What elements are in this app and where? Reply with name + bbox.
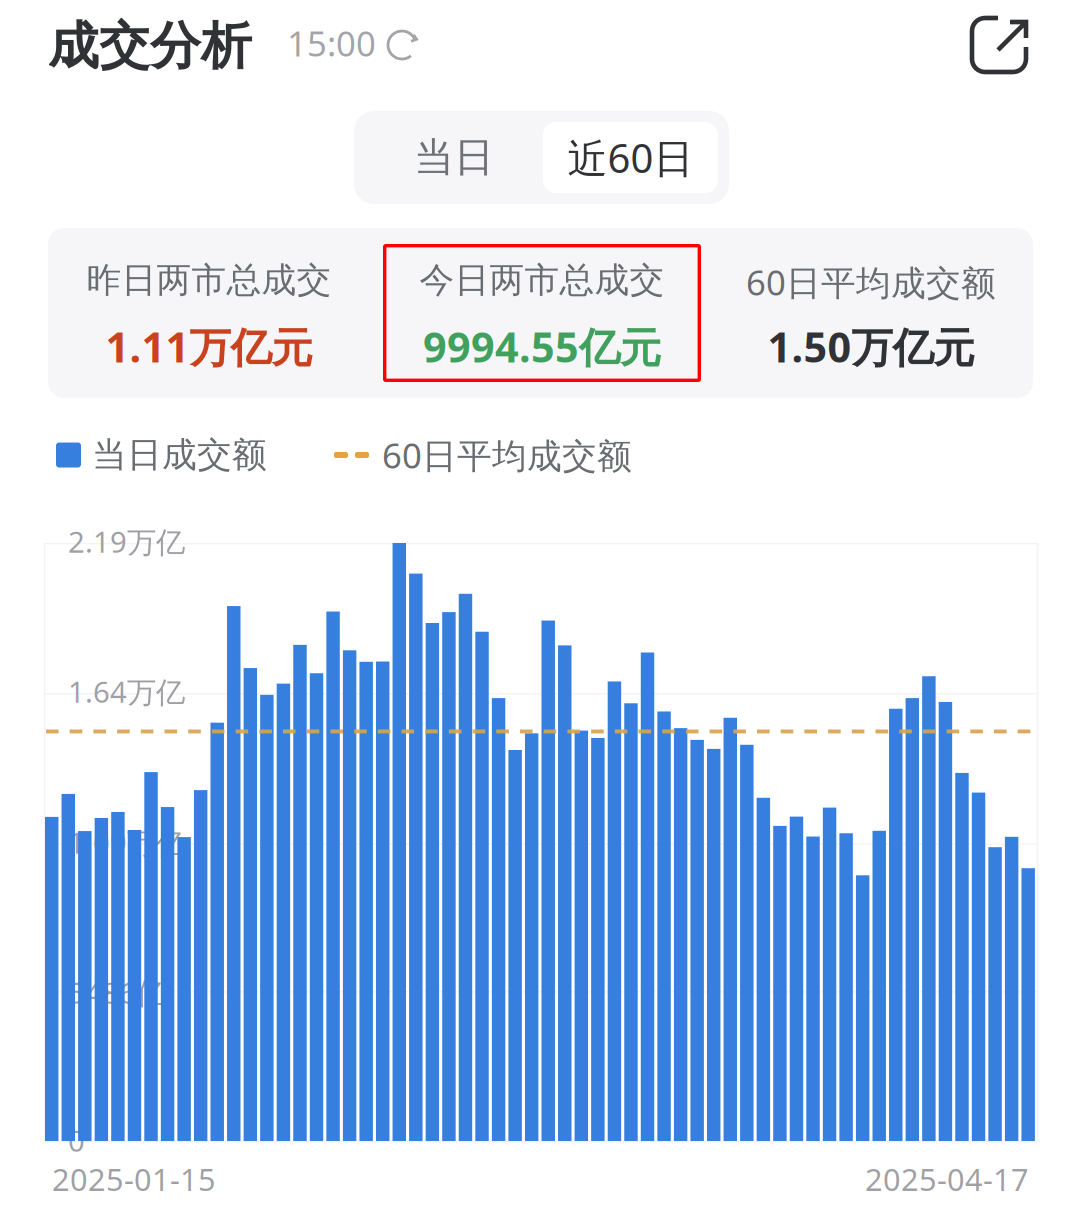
button[interactable]: 今日两市总成交 <box>383 244 701 382</box>
staticText: 当日成交额 <box>92 434 267 476</box>
staticText: 9994.55亿元 <box>423 319 661 374</box>
button[interactable]: 近60日 <box>543 122 718 193</box>
staticText: 1.11万亿元 <box>105 319 312 374</box>
staticText: 今日两市总成交 <box>419 259 664 302</box>
staticText: 60日平均成交额 <box>746 259 996 305</box>
staticText: 昨日两市总成交 <box>86 259 331 302</box>
button[interactable]: Refresh at 15:00 <box>287 14 416 72</box>
staticText: 2025-01-15 <box>52 1159 216 1199</box>
staticText: 1.09万亿 <box>68 823 185 862</box>
staticText: 当日 <box>414 133 494 182</box>
button[interactable]: Open in new window <box>972 18 1052 98</box>
staticText: 1.64万亿 <box>68 672 185 711</box>
staticText: 2.19万亿 <box>68 522 185 561</box>
staticText: 2025-04-17 <box>865 1159 1029 1199</box>
staticText: 近60日 <box>567 131 693 184</box>
staticText: 0 <box>68 1121 85 1160</box>
staticText: 60日平均成交额 <box>382 432 632 478</box>
button[interactable]: 当日 <box>365 122 543 193</box>
staticText: 成交分析 <box>48 15 252 77</box>
button[interactable]: 昨日两市总成交 <box>50 244 368 382</box>
staticText: 15:00 <box>287 20 376 66</box>
staticText: 5486亿 <box>68 973 165 1012</box>
staticText: 1.50万亿元 <box>767 319 974 374</box>
button[interactable]: 60日平均成交额 <box>712 244 1030 382</box>
